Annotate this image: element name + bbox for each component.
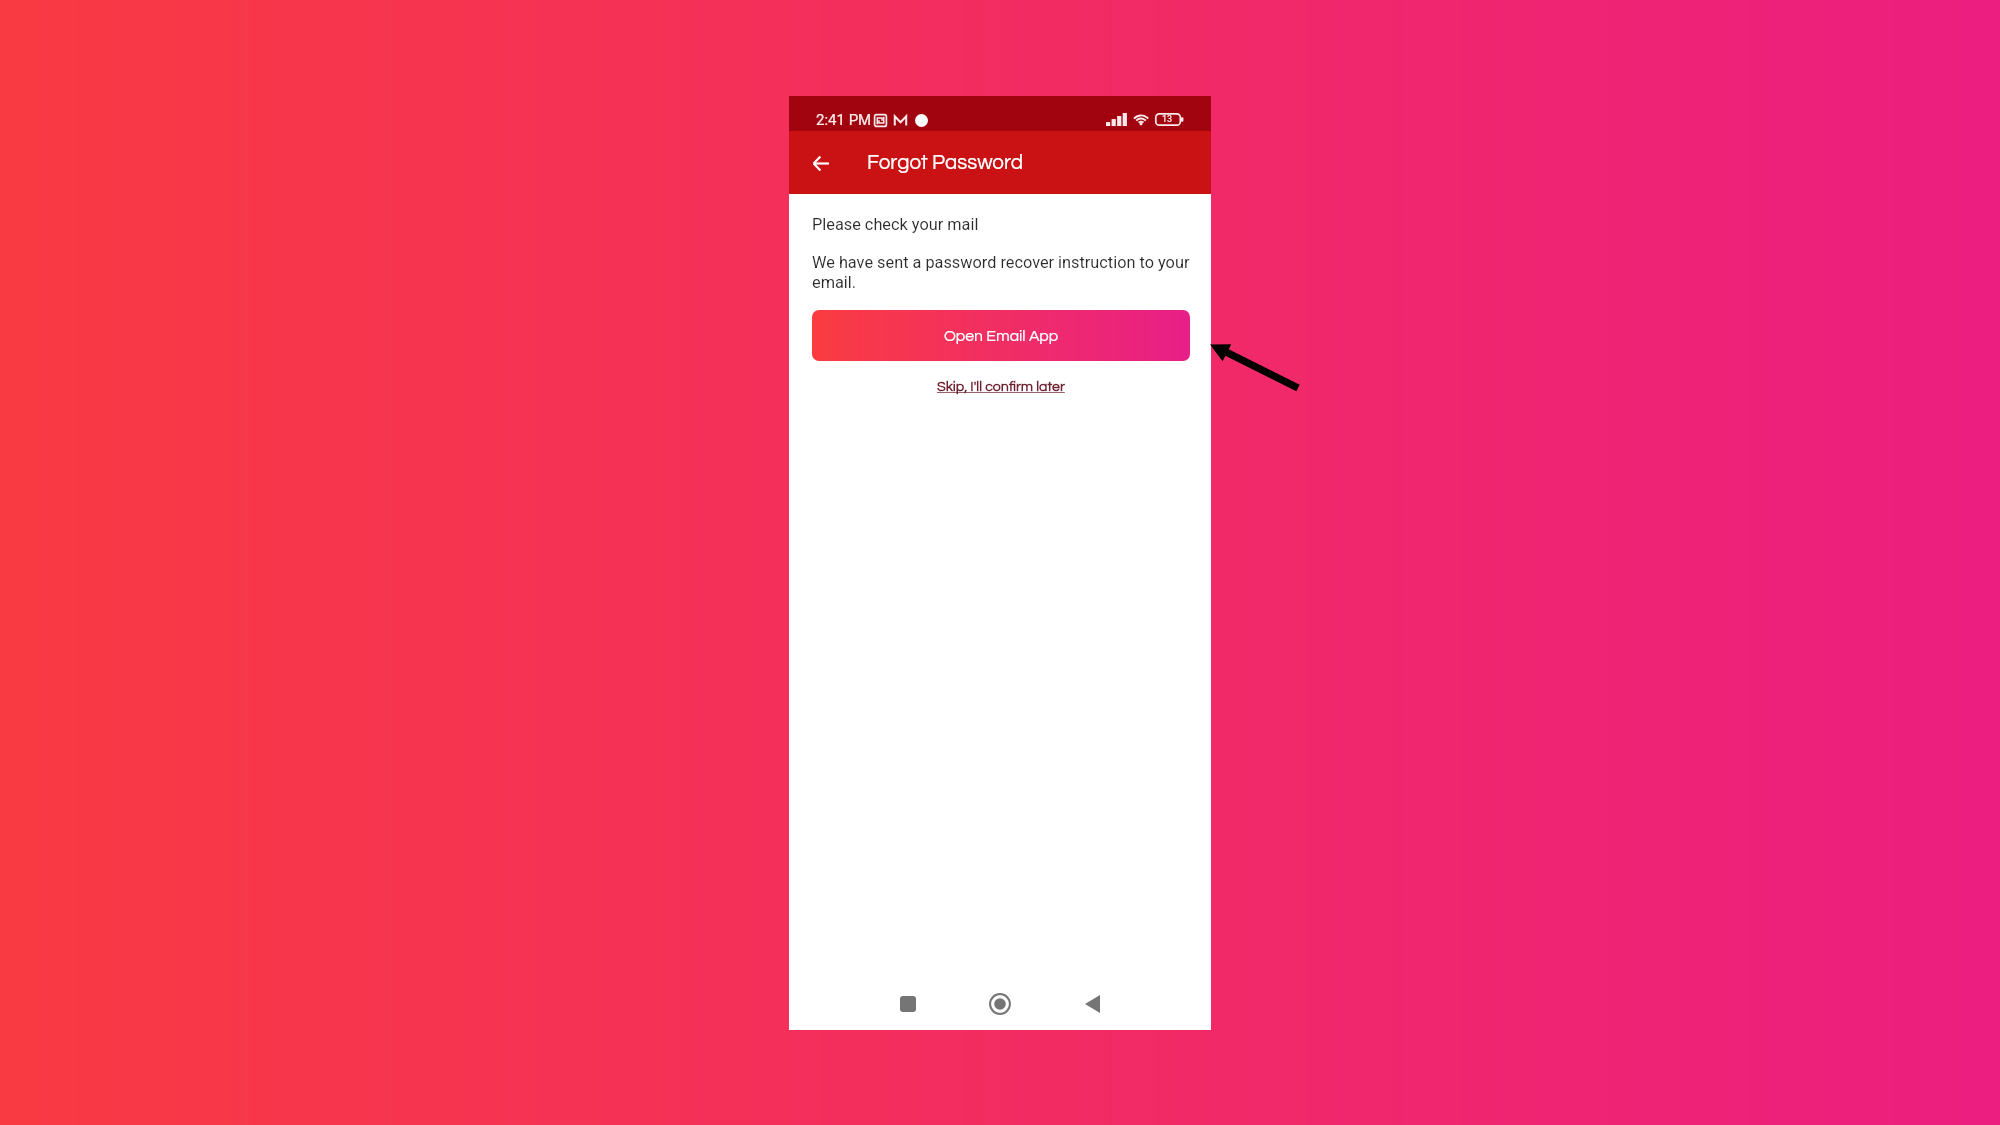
button[interactable]: Skip, I'll confirm later	[925, 373, 1077, 400]
staticText: Open Email App	[944, 328, 1059, 344]
staticText: Forgot Password	[867, 152, 1024, 173]
staticText: 2:41 PM	[816, 111, 872, 129]
button[interactable]: Back	[800, 142, 842, 184]
staticText: 13	[1162, 114, 1173, 125]
staticText: Please check your mail	[812, 215, 979, 234]
button[interactable]: Open Email App	[812, 310, 1190, 361]
button[interactable]: Back	[1071, 983, 1113, 1025]
staticText: Skip, I'll confirm later	[937, 379, 1065, 394]
staticText: We have sent a password recover instruct…	[812, 253, 1190, 292]
button[interactable]: Recents	[887, 983, 929, 1025]
button[interactable]: Home	[979, 983, 1021, 1025]
